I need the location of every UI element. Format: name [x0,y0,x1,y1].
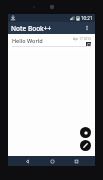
button[interactable]: More options [82,23,92,33]
staticText: 10:21 [81,15,93,21]
staticText: Apr 17 2016 [73,37,91,41]
staticText: Hello World [12,37,43,44]
button[interactable]: New note [80,140,91,151]
button[interactable]: Home [46,156,58,166]
button[interactable]: Recent apps [70,156,82,166]
button[interactable]: Hello World [9,35,94,49]
staticText: Note Book++ [11,24,82,33]
button[interactable]: Record [80,127,91,138]
button[interactable]: Back [21,156,33,166]
